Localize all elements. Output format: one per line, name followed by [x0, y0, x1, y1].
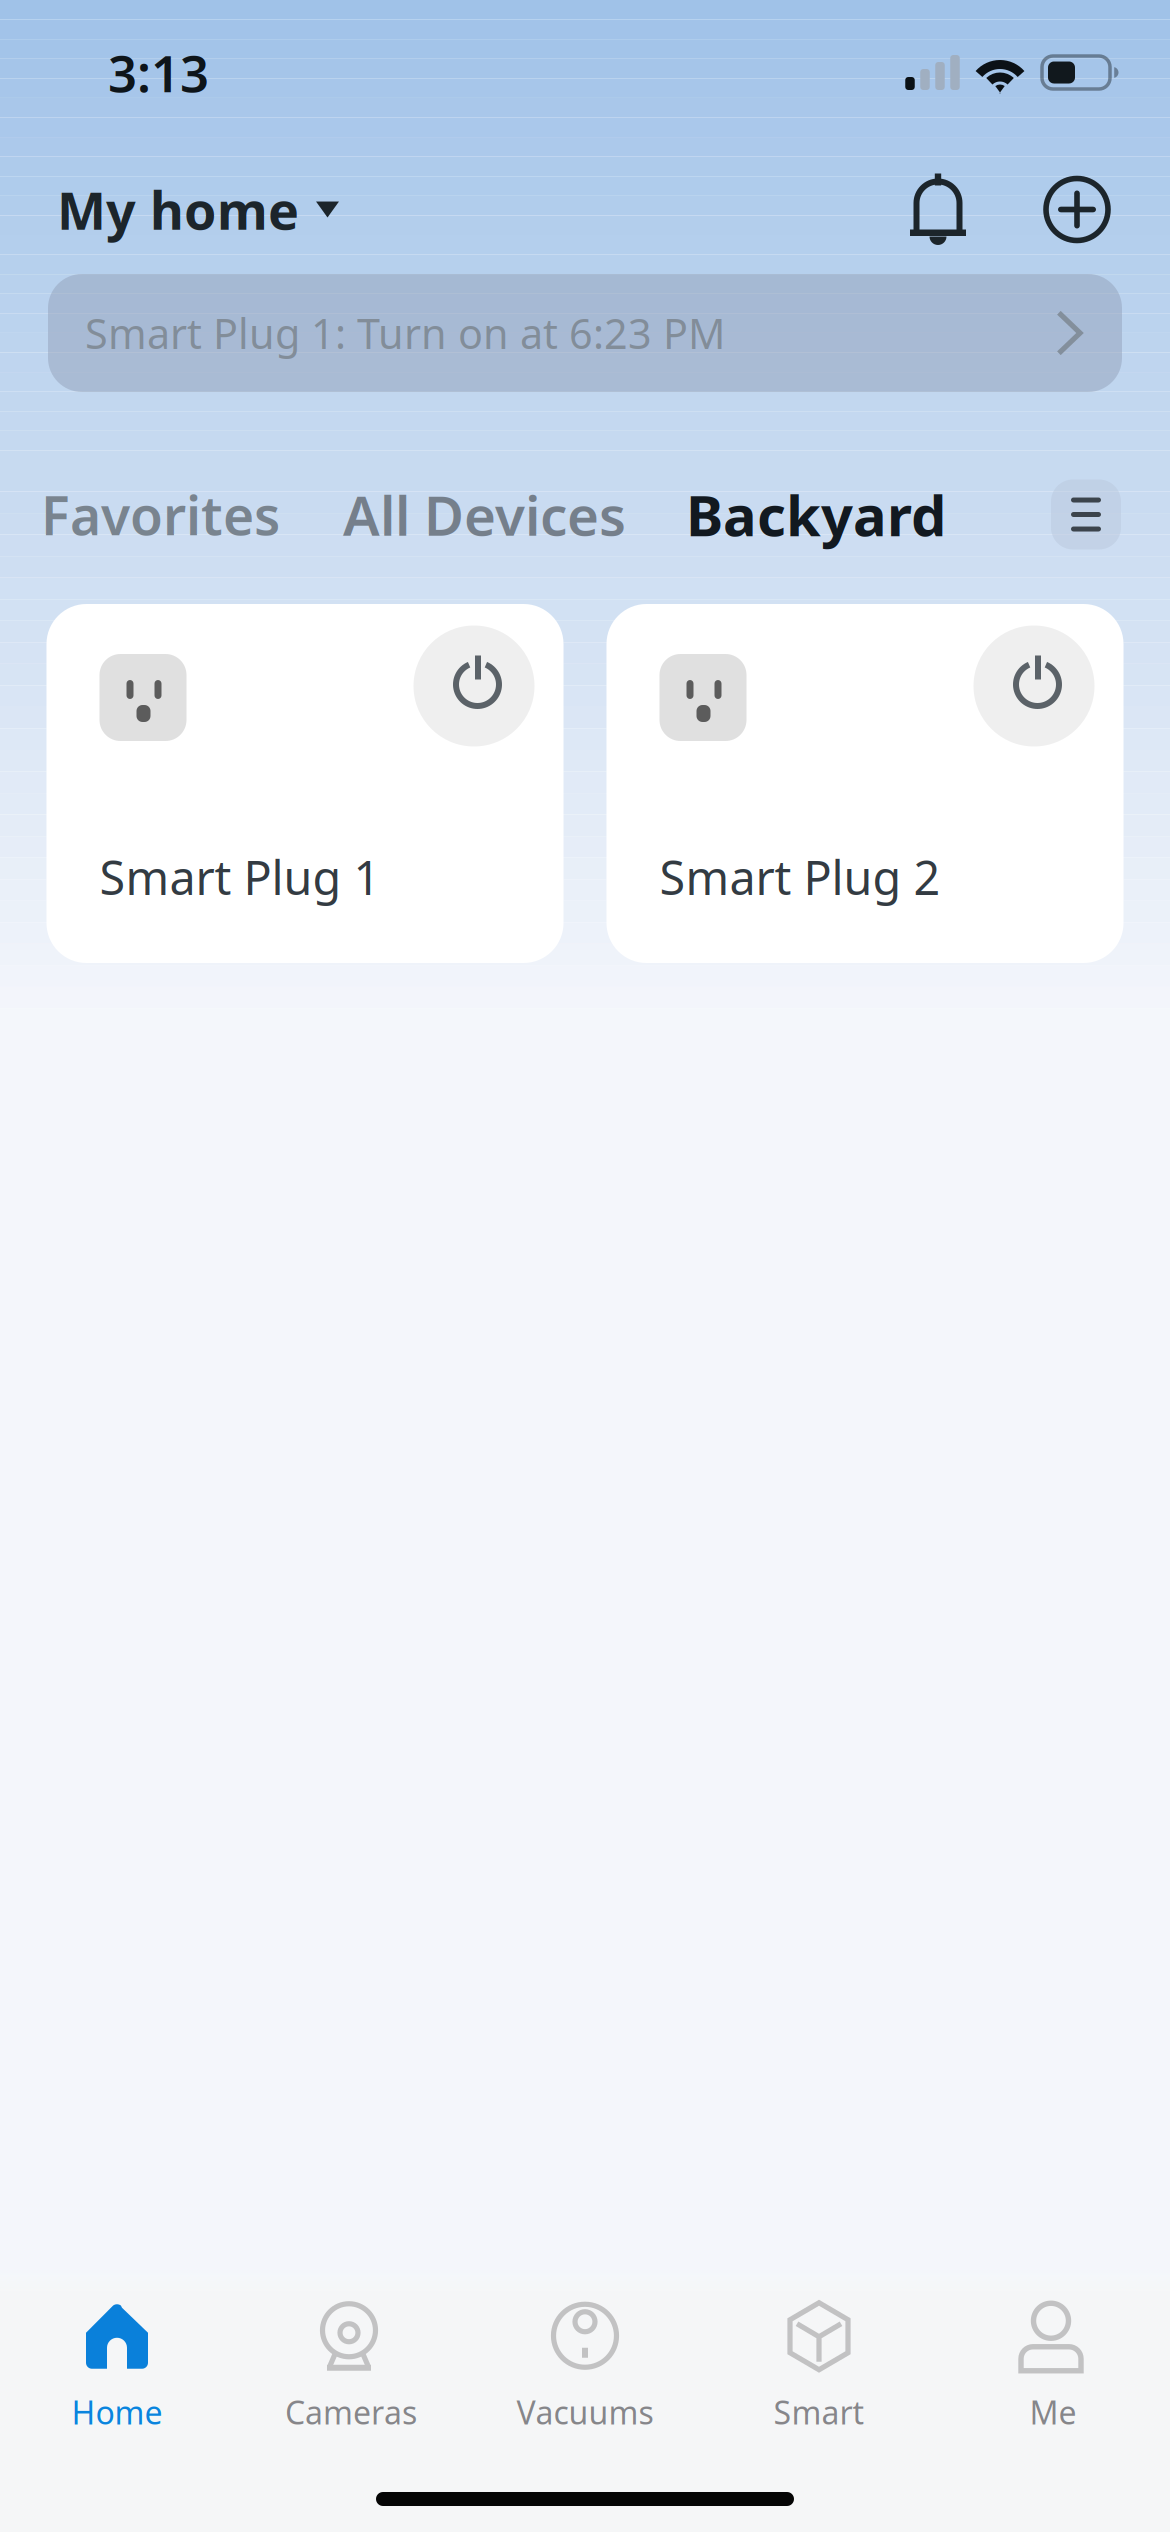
button[interactable]: All Devices — [343, 478, 626, 551]
staticText: Backyard — [686, 477, 946, 552]
staticText: Me — [1029, 2391, 1076, 2433]
staticText: Smart Plug 1 — [99, 846, 380, 908]
button[interactable]: Cameras — [234, 2300, 468, 2433]
button[interactable]: Smart Plug 2 — [606, 604, 1123, 963]
staticText: Smart Plug 2 — [659, 846, 940, 908]
button[interactable]: Home — [0, 2300, 234, 2433]
staticText: Vacuums — [516, 2391, 653, 2433]
staticText: Favorites — [41, 479, 280, 550]
button[interactable]: Vacuums — [468, 2300, 702, 2433]
button[interactable]: Smart Plug 1 — [46, 604, 563, 963]
staticText: All Devices — [343, 478, 626, 551]
button[interactable]: Me — [936, 2300, 1170, 2433]
button[interactable]: Favorites — [41, 479, 280, 550]
button[interactable]: Smart — [702, 2300, 936, 2433]
staticText: Smart Plug 1: Turn on at 6:23 PM — [85, 306, 725, 360]
staticText: Home — [71, 2391, 162, 2433]
staticText: 3:13 — [108, 39, 209, 106]
staticText: My home — [57, 175, 299, 244]
button[interactable]: My home — [57, 163, 339, 256]
staticText: Smart — [773, 2391, 864, 2433]
button[interactable]: Smart Plug 1: Turn on at 6:23 PM — [48, 274, 1122, 392]
button[interactable]: Room options — [1051, 479, 1121, 549]
button[interactable]: Add device — [1044, 176, 1110, 242]
button[interactable]: Backyard — [686, 477, 946, 552]
staticText: Cameras — [285, 2391, 417, 2433]
button[interactable]: Notifications — [910, 171, 966, 247]
